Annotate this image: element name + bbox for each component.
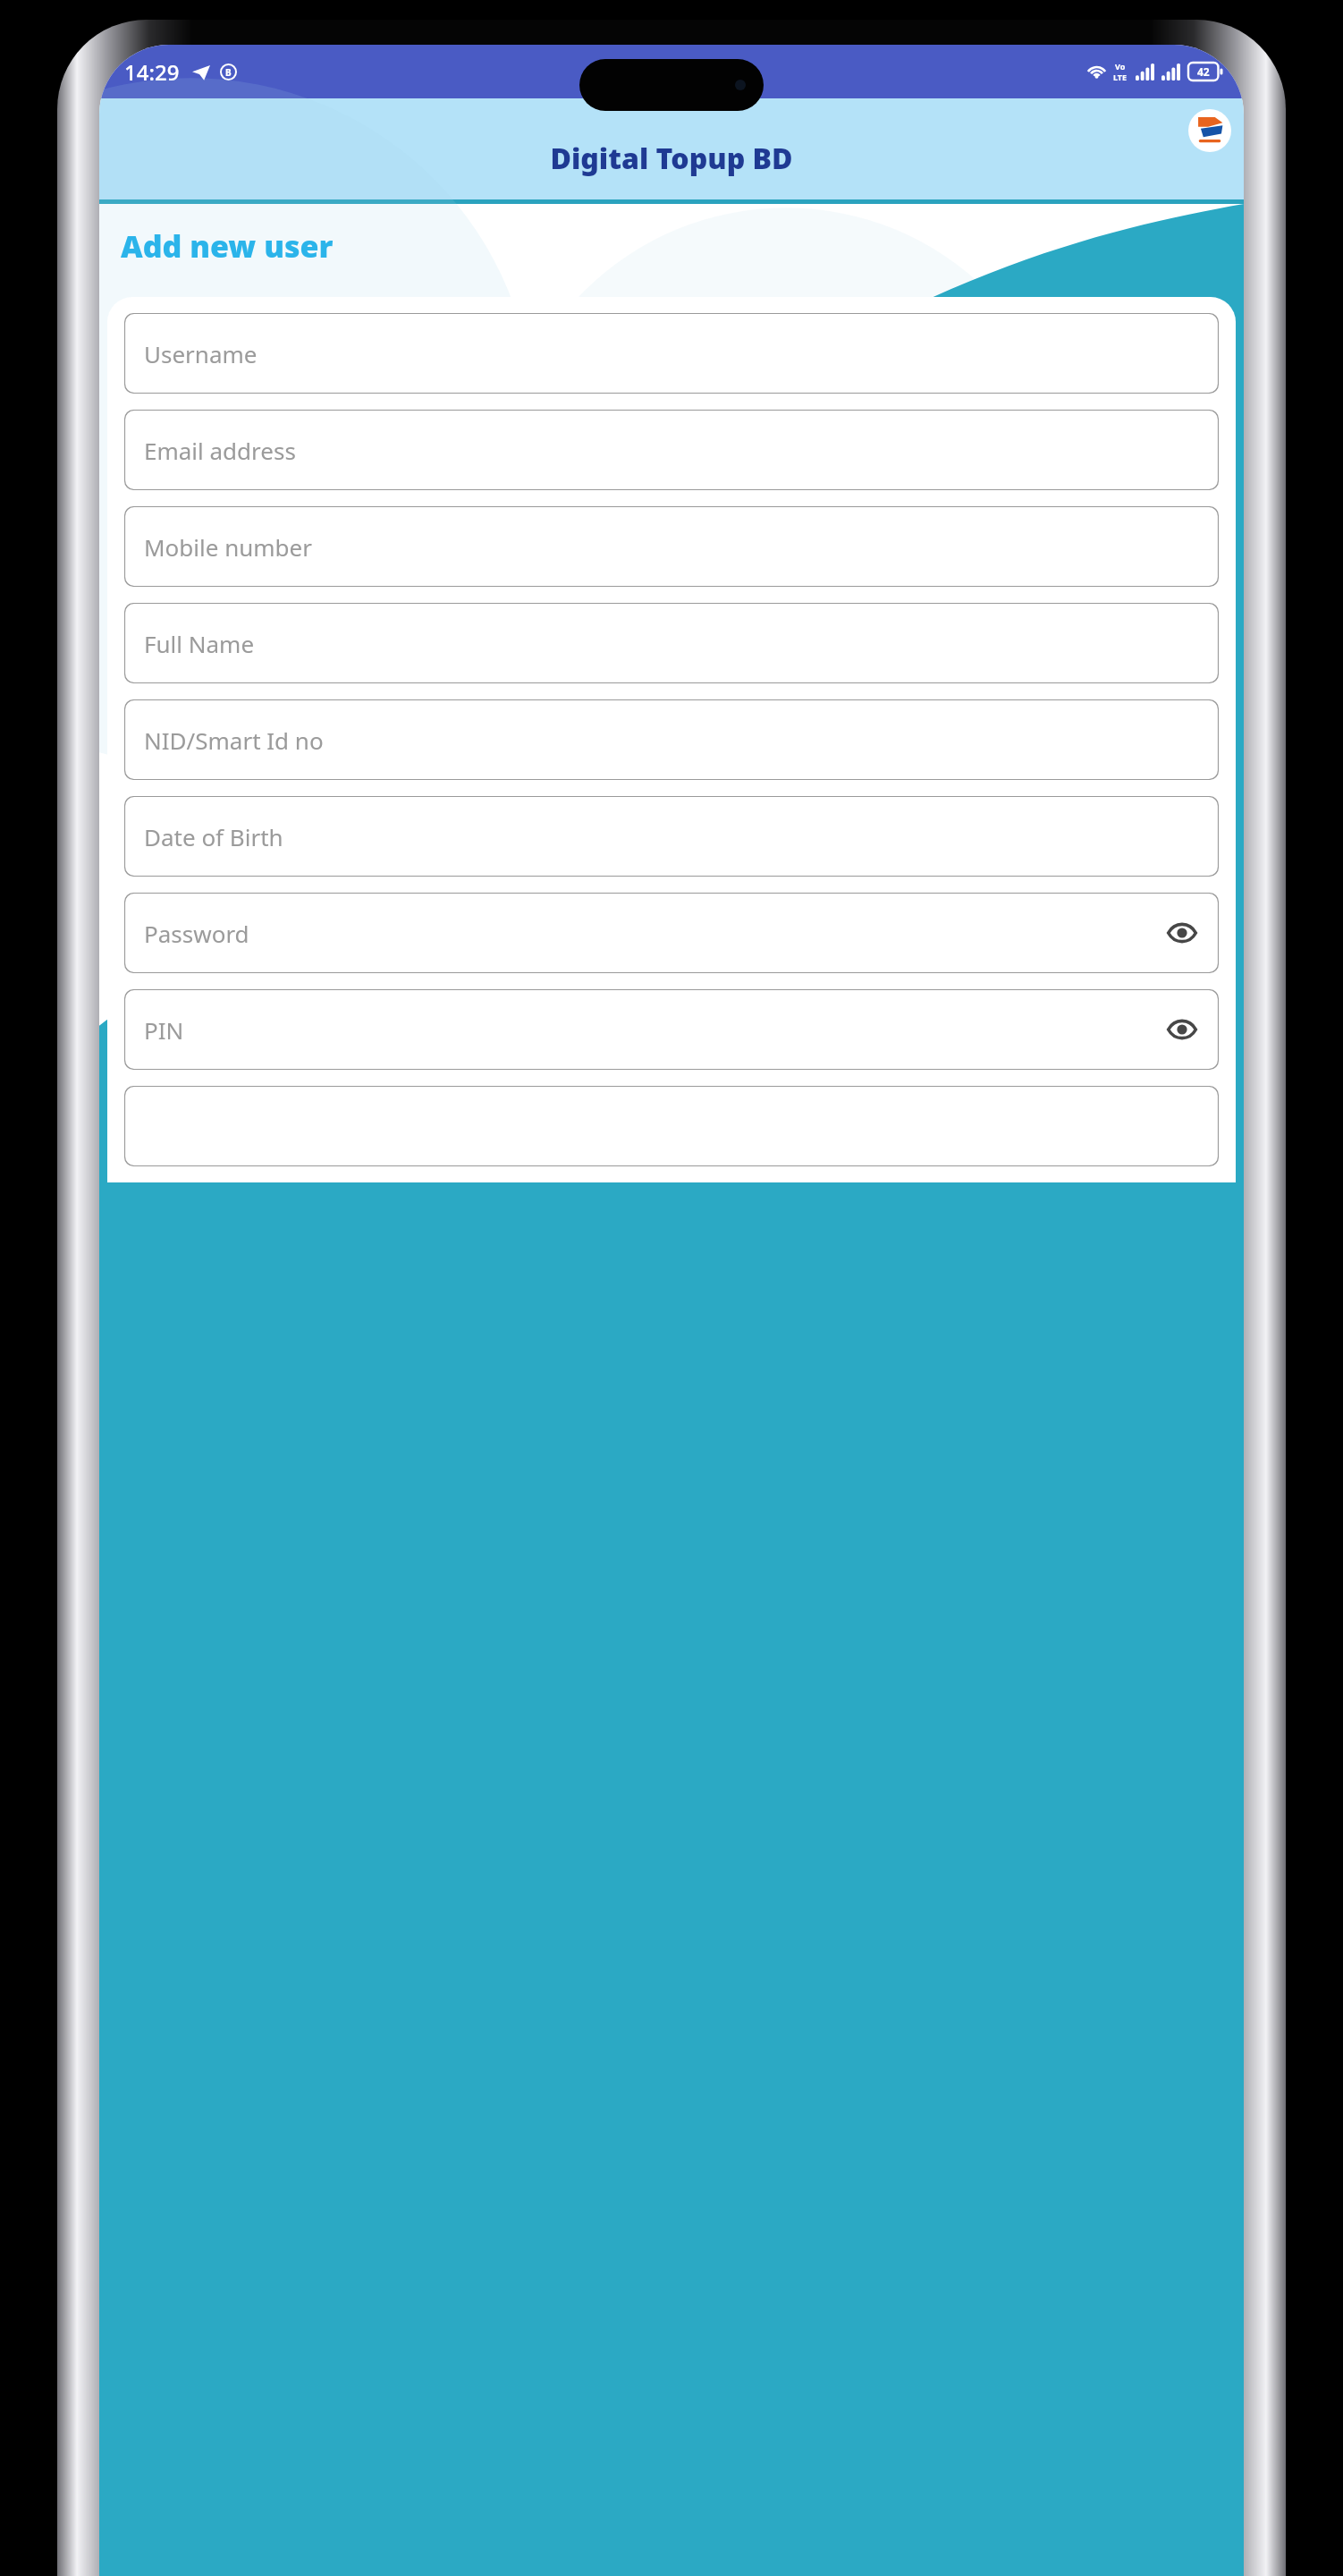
button[interactable]: PIN: [124, 989, 1219, 1070]
staticText: Email address: [144, 435, 296, 466]
staticText: Digital Topup BD: [99, 139, 1244, 178]
staticText: Add new user: [121, 225, 334, 267]
staticText: Username: [144, 338, 258, 369]
button[interactable]: Password: [124, 893, 1219, 973]
button[interactable]: NID/Smart Id no: [124, 699, 1219, 780]
button[interactable]: Date of Birth: [124, 796, 1219, 877]
button[interactable]: Mobile number: [124, 506, 1219, 587]
button[interactable]: Email address: [124, 410, 1219, 490]
staticText: Password: [144, 918, 249, 949]
button[interactable]: Toggle visibility: [1163, 1011, 1201, 1048]
staticText: PIN: [144, 1014, 184, 1046]
staticText: Full Name: [144, 628, 255, 659]
button[interactable]: Full Name: [124, 603, 1219, 683]
staticText: LTE: [1113, 72, 1128, 82]
staticText: B: [225, 66, 232, 79]
staticText: Date of Birth: [144, 821, 283, 852]
staticText: Vo: [1115, 61, 1126, 72]
staticText: 14:29: [124, 57, 180, 87]
staticText: Mobile number: [144, 531, 312, 563]
button[interactable]: Username: [124, 313, 1219, 394]
button[interactable]: Digital Topup BD logo: [1188, 109, 1231, 152]
staticText: 42: [1197, 64, 1210, 79]
button[interactable]: [124, 1086, 1219, 1166]
staticText: NID/Smart Id no: [144, 724, 324, 756]
button[interactable]: Toggle visibility: [1163, 914, 1201, 952]
